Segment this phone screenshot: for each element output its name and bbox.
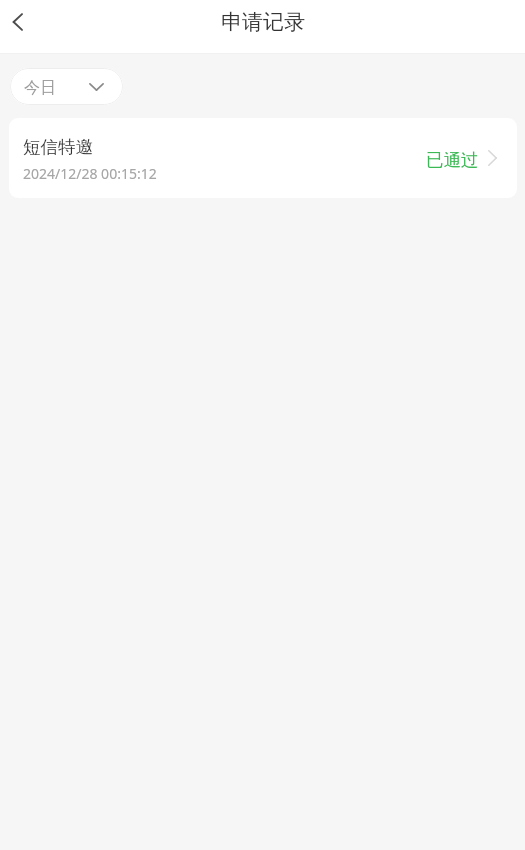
staticText: 短信特邀 (23, 136, 93, 158)
button[interactable]: 短信特邀 (9, 118, 517, 198)
staticText: 今日 (24, 78, 56, 98)
staticText: 已通过 (426, 149, 479, 171)
staticText: 2024/12/28 00:15:12 (23, 164, 157, 183)
staticText: 申请记录 (221, 9, 305, 35)
button[interactable]: 今日 (10, 68, 123, 105)
button[interactable]: Back (0, 0, 36, 44)
